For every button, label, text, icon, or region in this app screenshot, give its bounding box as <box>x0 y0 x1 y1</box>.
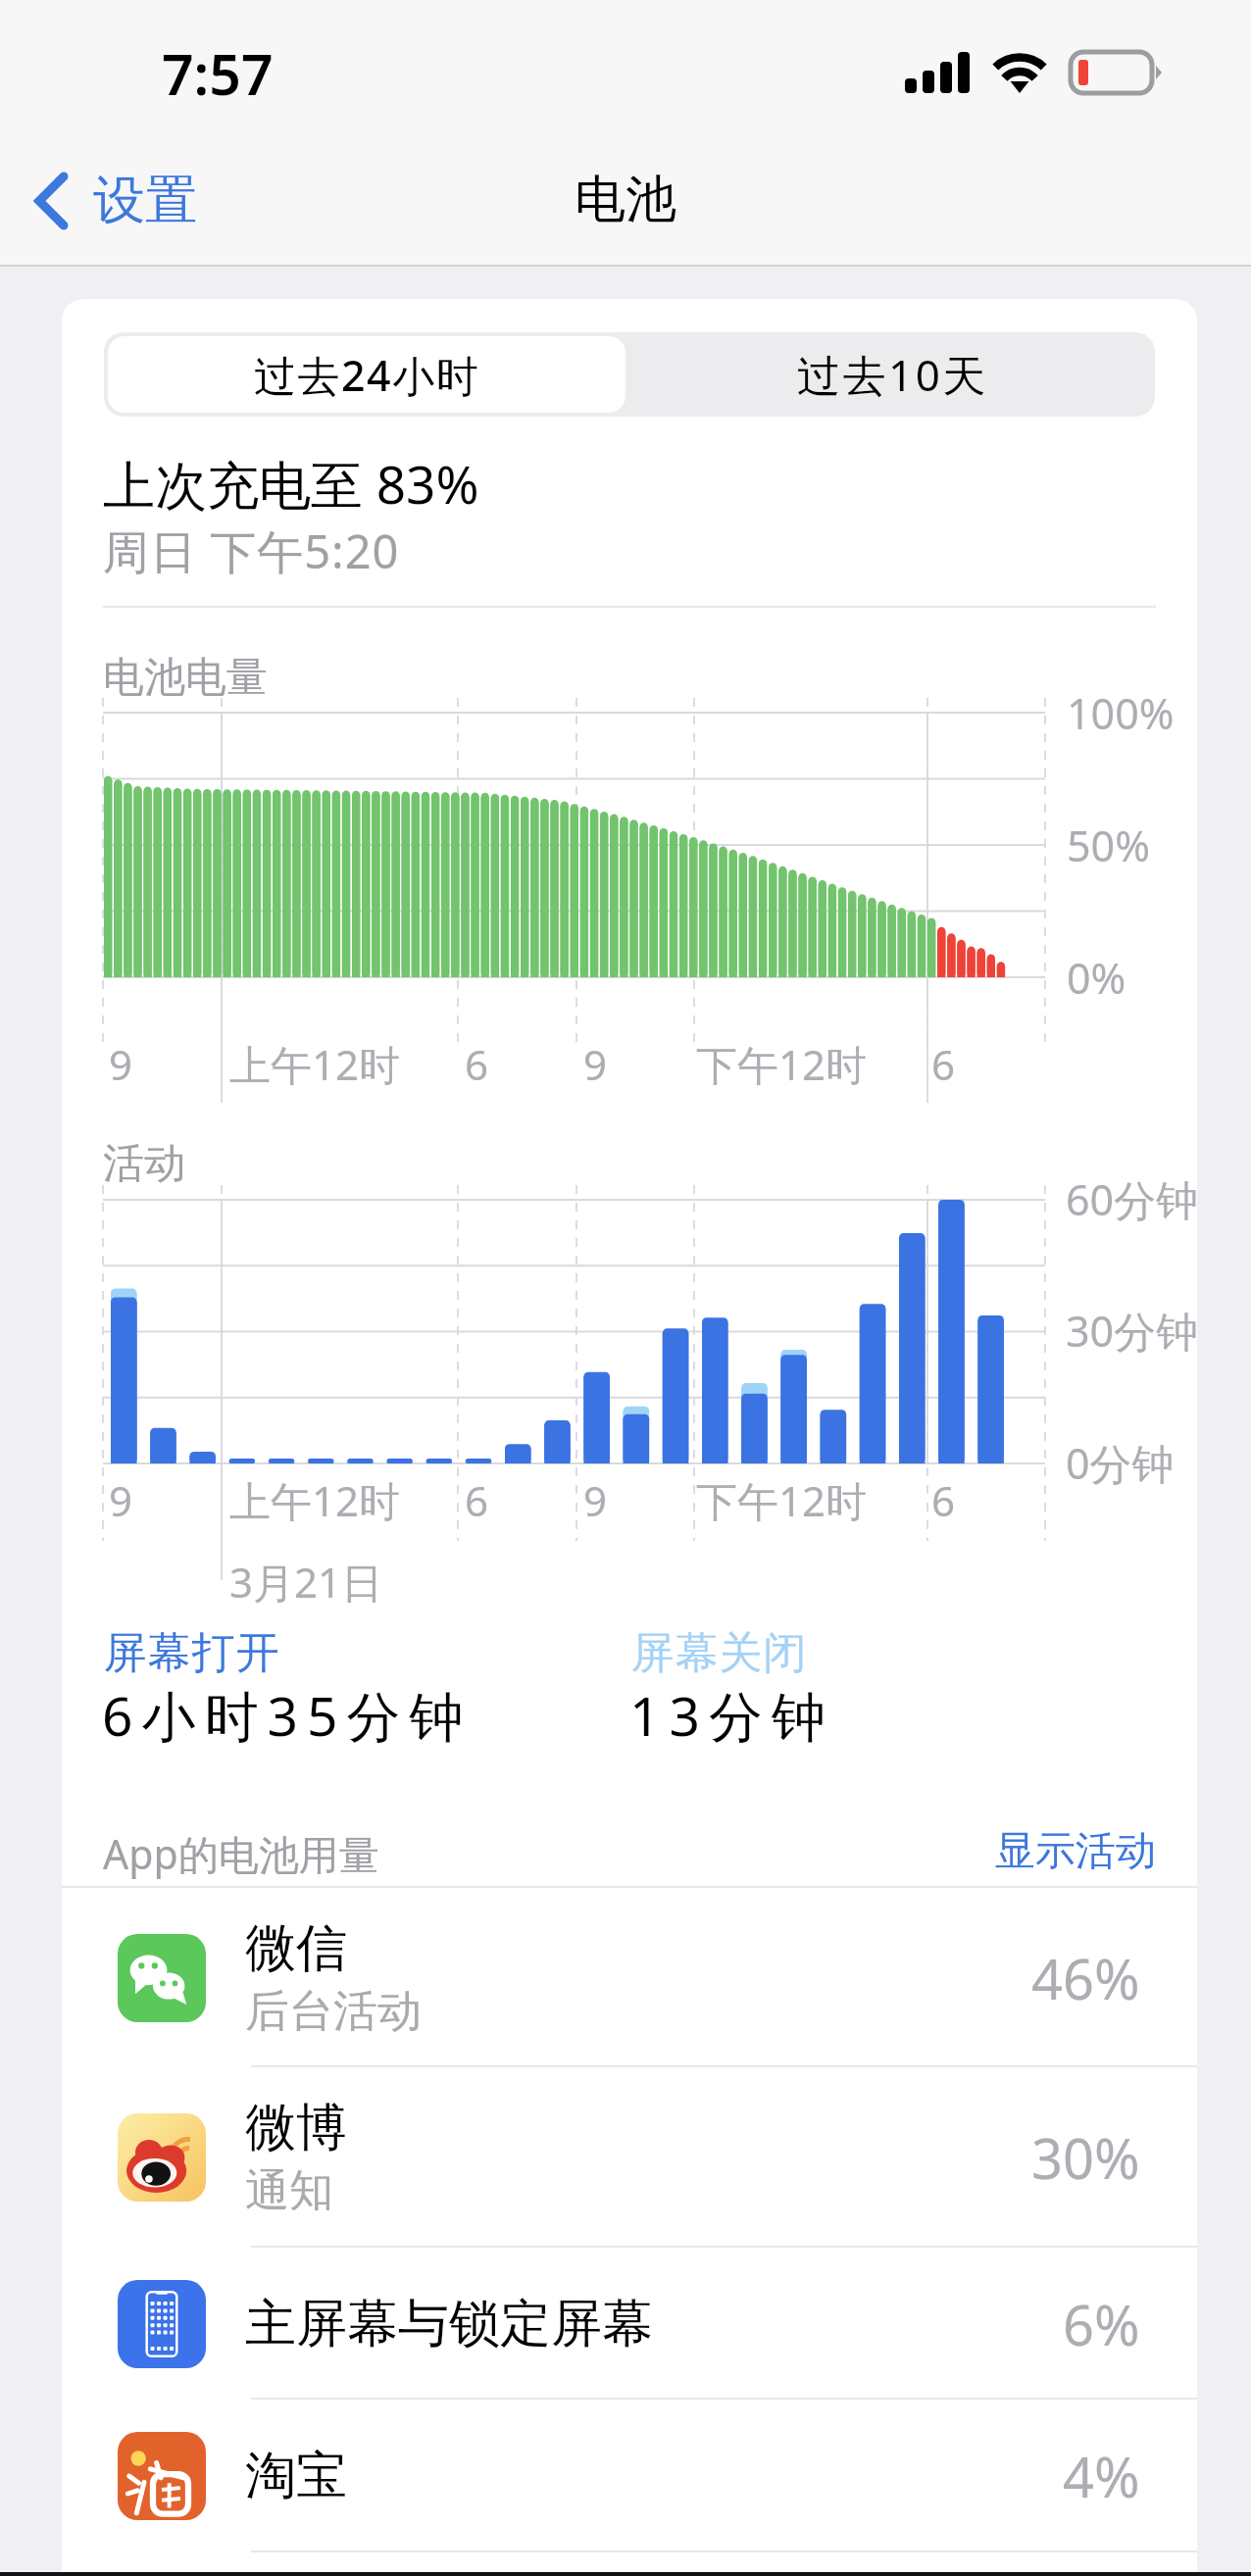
staticText: 0% <box>1067 949 1126 1007</box>
staticText: 通知 <box>245 2163 333 2219</box>
staticText: 上午12时 <box>229 1472 401 1528</box>
other: Home and Lock Screen <box>118 2280 206 2368</box>
button[interactable]: WeChat <box>62 1888 1197 2067</box>
staticText: 6 <box>931 1036 956 1092</box>
staticText: 电池电量 <box>103 652 268 704</box>
button[interactable]: Taobao <box>62 2400 1197 2552</box>
staticText: 60分钟 <box>1066 1170 1197 1228</box>
staticText: 30分钟 <box>1066 1302 1197 1360</box>
staticText: 30% <box>1031 2120 1140 2195</box>
staticText: 7:57 <box>162 35 274 112</box>
staticText: 6小时35分钟 <box>102 1678 473 1752</box>
staticText: 上次充电至 83% <box>103 448 479 519</box>
staticText: 电池 <box>575 168 676 232</box>
staticText: 周日 下午5:20 <box>103 520 400 582</box>
staticText: 9 <box>583 1472 608 1528</box>
staticText: 6 <box>465 1472 489 1528</box>
staticText: 后台活动 <box>245 1984 422 2040</box>
staticText: 显示活动 <box>995 1826 1156 1877</box>
staticText: 0分钟 <box>1066 1434 1175 1492</box>
other: WeChat <box>118 1934 206 2022</box>
button[interactable]: 过去24小时 <box>108 336 625 413</box>
button[interactable]: Back to Settings <box>0 156 217 245</box>
staticText: 微信 <box>245 1916 347 1981</box>
staticText: 屏幕打开 <box>103 1626 279 1680</box>
staticText: 设置 <box>93 168 197 233</box>
other: Taobao <box>118 2432 206 2520</box>
staticText: 3月21日 <box>229 1554 383 1610</box>
staticText: 下午12时 <box>696 1472 868 1528</box>
staticText: 4% <box>1063 2439 1140 2513</box>
staticText: 9 <box>109 1036 133 1092</box>
staticText: 过去24小时 <box>254 346 480 404</box>
staticText: 6 <box>931 1472 956 1528</box>
staticText: 主屏幕与锁定屏幕 <box>245 2292 653 2356</box>
other: Weibo <box>118 2113 206 2202</box>
staticText: 46% <box>1031 1941 1140 2015</box>
staticText: 下午12时 <box>696 1036 868 1092</box>
staticText: 过去10天 <box>797 345 988 404</box>
button[interactable]: 过去10天 <box>629 332 1155 417</box>
staticText: 上午12时 <box>229 1036 401 1092</box>
staticText: 微博 <box>245 2096 347 2160</box>
button[interactable]: Weibo <box>62 2067 1197 2248</box>
staticText: 活动 <box>103 1138 185 1190</box>
staticText: 9 <box>109 1472 133 1528</box>
staticText: 9 <box>583 1036 608 1092</box>
staticText: 50% <box>1067 817 1150 874</box>
staticText: 100% <box>1067 684 1175 742</box>
staticText: 6% <box>1063 2287 1140 2361</box>
button[interactable]: Home and Lock Screen <box>62 2248 1197 2400</box>
staticText: 6 <box>465 1036 489 1092</box>
button[interactable]: 显示活动 <box>995 1826 1156 1877</box>
staticText: 淘宝 <box>245 2444 347 2508</box>
staticText: 13分钟 <box>629 1678 834 1752</box>
staticText: 屏幕关闭 <box>630 1626 807 1680</box>
staticText: App的电池用量 <box>103 1826 379 1881</box>
